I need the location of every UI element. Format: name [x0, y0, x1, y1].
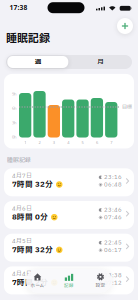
staticText: 1 [24, 140, 26, 145]
button[interactable]: 記録 [56, 270, 82, 292]
button[interactable]: 設定 [87, 270, 113, 292]
staticText: 06:48 [104, 180, 122, 189]
staticText: 7 [110, 140, 112, 145]
button[interactable]: 週/月 切り替え [6, 55, 132, 69]
staticText: 週 [35, 57, 41, 67]
staticText: 記録 [64, 282, 74, 289]
button[interactable] [4, 201, 134, 229]
staticText: 月 [97, 57, 103, 67]
staticText: ホーム [30, 282, 44, 289]
staticText: 4月7日 [12, 172, 32, 180]
staticText: 目標 [122, 103, 132, 111]
staticText: 7時間 2分 [12, 277, 48, 288]
staticText: 睡眠記録 [6, 30, 50, 47]
staticText: 06:17 [104, 246, 122, 254]
button[interactable] [4, 266, 134, 294]
staticText: 4月6日 [12, 204, 32, 213]
staticText: 設定 [95, 282, 105, 289]
button[interactable]: ホーム [24, 270, 50, 292]
staticText: 7時間 32分 [12, 244, 53, 256]
staticText: 07:12 [104, 279, 122, 287]
staticText: 4 [67, 140, 69, 145]
staticText: 睡眠記録 [7, 156, 31, 165]
staticText: 23:16 [104, 173, 122, 182]
staticText: 07:46 [104, 213, 122, 222]
staticText: 22:45 [104, 238, 122, 247]
staticText: 3h [12, 120, 16, 125]
button[interactable]: 記録を追加 [117, 18, 133, 34]
staticText: 2 [38, 140, 40, 145]
staticText: 8時間 0分 [12, 211, 48, 223]
staticText: 17:38 [9, 3, 27, 12]
staticText: 4月5日 [12, 237, 32, 246]
staticText: 5 [81, 140, 83, 145]
staticText: 0h [12, 134, 16, 140]
staticText: 23:46 [104, 206, 122, 214]
staticText: 23:38 [104, 271, 122, 280]
button[interactable] [4, 234, 134, 262]
staticText: 4月4日 [12, 270, 32, 278]
button[interactable] [4, 168, 134, 196]
staticText: 6h [12, 106, 16, 111]
staticText: 9h [12, 91, 16, 97]
staticText: 7時間 32分 [12, 179, 53, 190]
staticText: 6 [96, 140, 98, 145]
staticText: 3 [53, 140, 55, 145]
